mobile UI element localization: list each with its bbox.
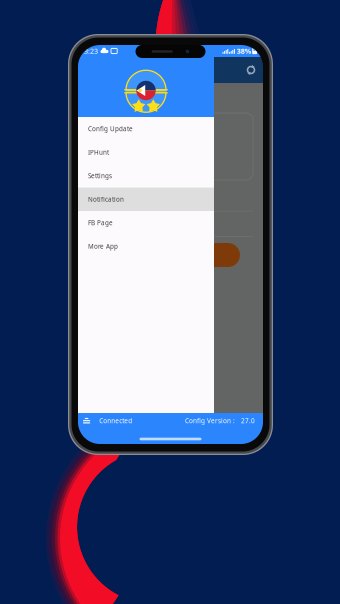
button[interactable]: Config Update bbox=[78, 117, 214, 140]
staticText: More App bbox=[88, 242, 118, 250]
staticText: 38% bbox=[237, 46, 251, 56]
button[interactable]: Menu bbox=[78, 413, 95, 428]
button[interactable]: Settings bbox=[78, 164, 214, 187]
staticText: Notification bbox=[88, 195, 124, 203]
button[interactable]: Notification bbox=[78, 187, 214, 211]
staticText: 3:23 bbox=[84, 46, 98, 56]
staticText: Config Version : 27.0 bbox=[185, 416, 255, 425]
staticText: FB Page bbox=[88, 218, 113, 227]
button[interactable]: Refresh bbox=[239, 57, 263, 83]
button[interactable]: More App bbox=[78, 234, 214, 258]
staticText: Settings bbox=[88, 171, 112, 180]
button[interactable]: FB Page bbox=[78, 211, 214, 234]
button[interactable]: IPHunt bbox=[78, 140, 214, 164]
staticText: Config Update bbox=[88, 124, 133, 133]
button[interactable]: Connect bbox=[102, 243, 240, 267]
staticText: SERVER CONFIG 02 bbox=[89, 218, 149, 227]
staticText: Connected bbox=[99, 416, 132, 425]
staticText: IPHunt bbox=[88, 148, 109, 156]
